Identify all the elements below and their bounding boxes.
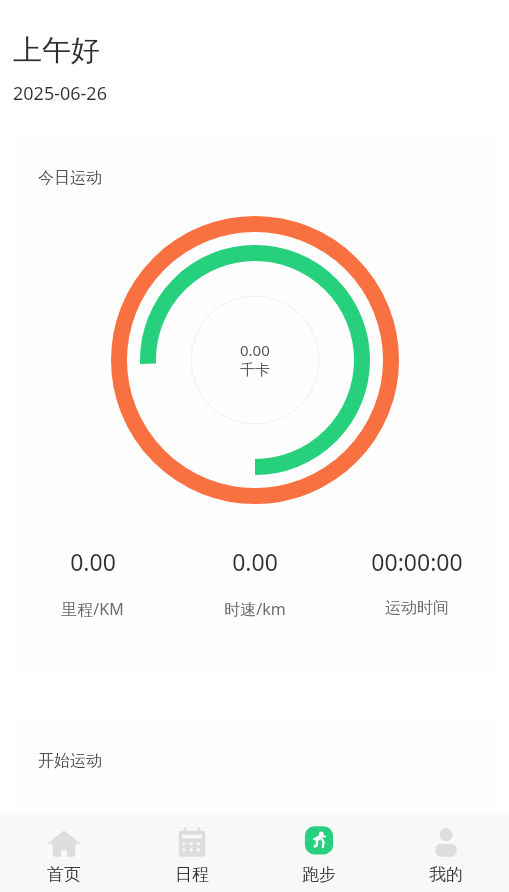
staticText: 0.00 <box>240 340 270 360</box>
staticText: 0.00 <box>232 546 278 577</box>
staticText: 开始运动 <box>38 751 102 771</box>
staticText: 0.00 <box>70 546 116 577</box>
button[interactable]: Home <box>0 815 128 892</box>
staticText: 00:00:00 <box>371 546 463 577</box>
button[interactable]: Run <box>255 815 382 892</box>
staticText: 2025-06-26 <box>13 81 107 106</box>
button[interactable]: 今日运动 <box>11 134 498 673</box>
staticText: 千卡 <box>240 361 270 380</box>
staticText: 首页 <box>47 864 81 885</box>
staticText: 里程/KM <box>61 598 124 620</box>
staticText: 跑步 <box>302 864 336 885</box>
staticText: 今日运动 <box>38 168 102 188</box>
staticText: 日程 <box>175 864 209 885</box>
button[interactable]: Schedule <box>128 815 255 892</box>
staticText: 运动时间 <box>385 598 449 618</box>
staticText: 我的 <box>429 864 463 885</box>
staticText: 时速/km <box>224 598 286 620</box>
staticText: 上午好 <box>13 32 100 69</box>
button[interactable]: 开始运动 <box>11 716 498 836</box>
button[interactable]: Profile <box>382 815 509 892</box>
